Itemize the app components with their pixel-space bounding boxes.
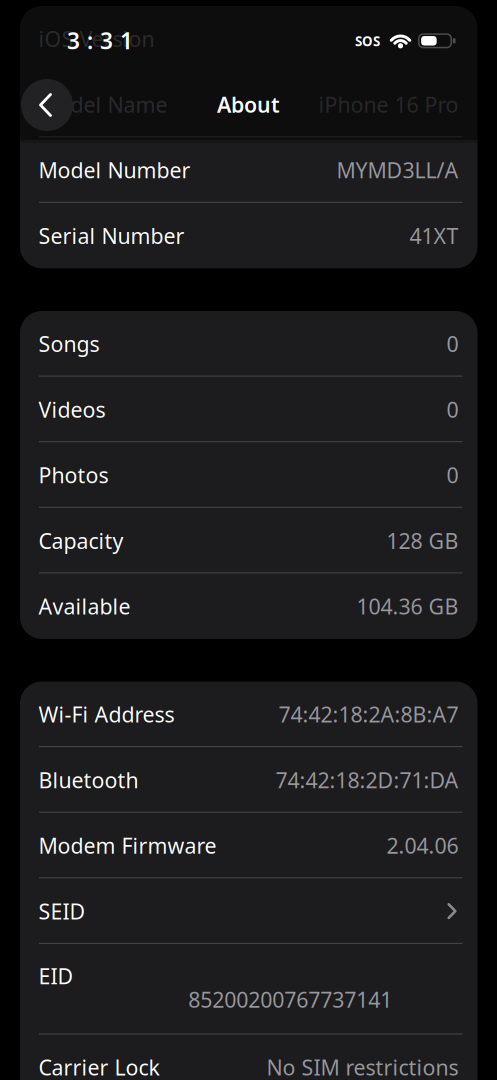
staticText: Model Number	[38, 156, 190, 184]
staticText: 3:31	[67, 25, 133, 55]
staticText: Available	[38, 592, 130, 620]
staticText: 0	[446, 395, 458, 423]
staticText: Capacity	[38, 526, 123, 555]
staticText: 85200200767737141	[188, 985, 392, 1013]
staticText: Model Name	[38, 90, 167, 118]
staticText: 0	[446, 461, 458, 489]
staticText: 104.36 GB	[356, 592, 458, 620]
staticText: Serial Number	[38, 221, 184, 250]
staticText: 2.04.06	[386, 831, 458, 860]
staticText: SEID	[38, 897, 85, 925]
staticText: 0	[446, 330, 458, 358]
staticText: 128 GB	[386, 526, 458, 555]
staticText: iOS Version	[38, 25, 154, 53]
staticText: No SIM restrictions	[266, 1053, 458, 1080]
staticText: Songs	[38, 330, 99, 358]
staticText: Videos	[38, 395, 105, 423]
staticText: Photos	[38, 461, 108, 489]
staticText: SOS	[355, 32, 380, 50]
staticText: 74:42:18:2A:8B:A7	[278, 700, 458, 728]
staticText: About	[217, 90, 280, 119]
button[interactable]: SEID	[20, 878, 477, 944]
staticText: EID	[38, 962, 73, 990]
staticText: Modem Firmware	[38, 831, 216, 860]
staticText: 74:42:18:2D:71:DA	[275, 766, 458, 794]
button[interactable]: Back	[21, 79, 73, 131]
staticText: iPhone 16 Pro	[318, 90, 458, 118]
staticText: 41XT	[409, 221, 458, 250]
staticText: Bluetooth	[38, 766, 138, 794]
staticText: Carrier Lock	[38, 1053, 159, 1080]
staticText: MYMD3LL/A	[336, 156, 458, 184]
staticText: Wi-Fi Address	[38, 700, 174, 728]
